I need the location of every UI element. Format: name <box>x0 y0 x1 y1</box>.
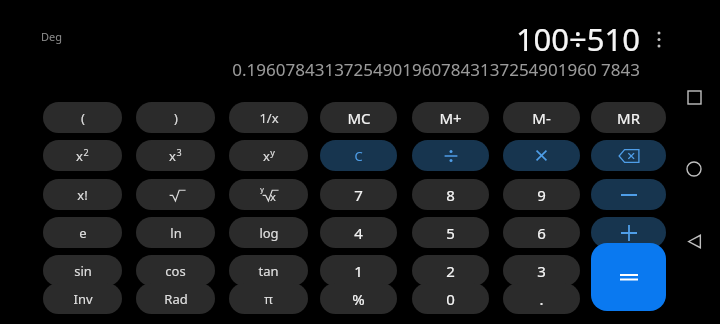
staticText: 0 <box>446 289 455 309</box>
staticText: y <box>260 185 264 195</box>
button[interactable]: 9 <box>503 179 580 210</box>
staticText: 1 <box>354 261 363 281</box>
button[interactable]: ) <box>136 102 215 133</box>
staticText: 8 <box>446 185 455 205</box>
staticText: π <box>264 290 273 308</box>
button[interactable]: Equals <box>591 243 666 311</box>
staticText: 2 <box>446 261 455 281</box>
staticText: 7 <box>354 185 363 205</box>
button[interactable]: 1 <box>320 255 397 286</box>
button[interactable]: M- <box>503 102 580 133</box>
staticText: 5 <box>446 223 455 243</box>
button[interactable]: MC <box>320 102 397 133</box>
staticText: x <box>169 147 176 165</box>
staticText: . <box>539 289 544 309</box>
staticText: 3 <box>537 261 546 281</box>
staticText: y <box>270 146 275 158</box>
staticText: 6 <box>537 223 546 243</box>
staticText: ) <box>174 109 178 127</box>
button[interactable]: 5 <box>412 217 489 248</box>
staticText: e <box>79 224 87 242</box>
staticText: Deg <box>41 29 62 44</box>
button[interactable]: . <box>503 283 580 314</box>
staticText: 3 <box>176 146 182 158</box>
button[interactable]: % <box>320 283 397 314</box>
staticText: 4 <box>354 223 363 243</box>
staticText: cos <box>165 262 186 280</box>
staticText: sin <box>74 262 92 280</box>
button[interactable]: 0 <box>412 283 489 314</box>
button[interactable]: x! <box>43 179 122 210</box>
button[interactable]: tan <box>229 255 308 286</box>
staticText: tan <box>258 262 279 280</box>
button[interactable]: ln <box>136 217 215 248</box>
staticText: MC <box>347 108 371 128</box>
button[interactable]: 6 <box>503 217 580 248</box>
button[interactable]: Recents <box>677 80 711 114</box>
staticText: 2 <box>83 146 89 158</box>
staticText: 1/x <box>259 109 279 127</box>
staticText: x <box>76 147 83 165</box>
button[interactable]: x <box>43 140 122 171</box>
staticText: 9 <box>537 185 546 205</box>
button[interactable]: sin <box>43 255 122 286</box>
staticText: x! <box>77 186 88 204</box>
staticText: % <box>352 289 365 309</box>
button[interactable]: Multiply <box>503 140 580 171</box>
button[interactable]: 1/x <box>229 102 308 133</box>
button[interactable]: MR <box>591 102 666 133</box>
button[interactable]: Home <box>677 152 711 186</box>
button[interactable]: log <box>229 217 308 248</box>
button[interactable]: Minus <box>591 179 666 210</box>
staticText: Rad <box>164 290 188 308</box>
button[interactable]: 8 <box>412 179 489 210</box>
staticText: x <box>263 147 270 165</box>
button[interactable]: 7 <box>320 179 397 210</box>
staticText: ( <box>81 109 85 127</box>
button[interactable]: x <box>136 140 215 171</box>
button[interactable]: cos <box>136 255 215 286</box>
button[interactable]: π <box>229 283 308 314</box>
button[interactable] <box>136 179 215 210</box>
button[interactable]: Inv <box>43 283 122 314</box>
button[interactable]: Plus <box>591 217 666 248</box>
staticText: log <box>259 224 279 242</box>
button[interactable]: Backspace <box>591 140 666 171</box>
button[interactable]: e <box>43 217 122 248</box>
staticText: x <box>270 189 276 204</box>
staticText: ln <box>170 224 182 242</box>
staticText: 0.196078431372549019607843137254901960 7… <box>40 58 640 81</box>
staticText: 100÷510 <box>470 18 640 60</box>
button[interactable]: 2 <box>412 255 489 286</box>
button[interactable]: Back <box>677 224 711 258</box>
button[interactable]: More options <box>646 22 672 56</box>
button[interactable]: C <box>320 140 397 171</box>
button[interactable]: x <box>229 140 308 171</box>
staticText: M+ <box>439 108 462 128</box>
staticText: C <box>354 147 363 165</box>
staticText: Inv <box>73 290 93 308</box>
button[interactable]: y <box>229 179 308 210</box>
button[interactable]: Rad <box>136 283 215 314</box>
button[interactable]: 4 <box>320 217 397 248</box>
staticText: MR <box>617 108 640 128</box>
button[interactable]: M+ <box>412 102 489 133</box>
button[interactable]: 3 <box>503 255 580 286</box>
button[interactable]: Divide <box>412 140 489 171</box>
staticText: M- <box>532 108 551 128</box>
button[interactable]: ( <box>43 102 122 133</box>
